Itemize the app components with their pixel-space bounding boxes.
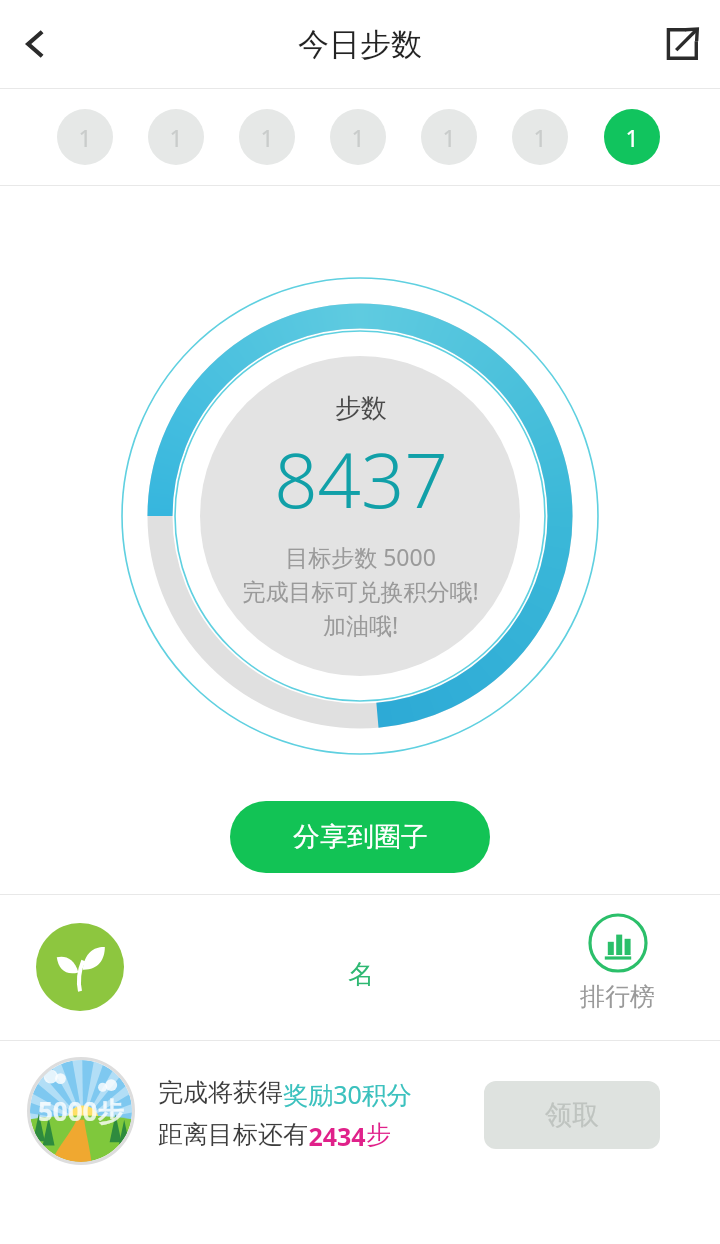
staticText: 分享到圈子: [293, 820, 428, 854]
button[interactable]: 1: [57, 109, 113, 165]
staticText: 目标步数 5000 完成目标可兑换积分哦! 加油哦!: [242, 541, 479, 641]
button[interactable]: Sprout: [36, 923, 124, 1011]
staticText: 步数: [335, 392, 387, 425]
button[interactable]: 分享到圈子: [230, 801, 490, 873]
staticText: 1: [442, 122, 456, 153]
staticText: 1: [169, 122, 183, 153]
staticText: 名: [348, 958, 374, 991]
staticText: 距离目标还有: [158, 1119, 308, 1150]
staticText: 1: [625, 122, 639, 153]
staticText: 1: [78, 122, 92, 153]
staticText: 1: [260, 122, 274, 153]
staticText: 步: [366, 1119, 391, 1150]
staticText: 1: [533, 122, 547, 153]
staticText: 5000步: [38, 1093, 124, 1129]
button[interactable]: 排行榜: [560, 913, 675, 1012]
button[interactable]: 1: [421, 109, 477, 165]
button[interactable]: 1: [604, 109, 660, 165]
staticText: 奖励30积分: [283, 1077, 412, 1111]
button[interactable]: Share: [644, 6, 720, 82]
staticText: 排行榜: [580, 981, 655, 1012]
staticText: 2434: [308, 1119, 366, 1153]
button[interactable]: 1: [512, 109, 568, 165]
button[interactable]: 1: [239, 109, 295, 165]
button[interactable]: Back: [0, 8, 72, 80]
button[interactable]: 1: [148, 109, 204, 165]
staticText: 1: [351, 122, 365, 153]
staticText: 领取: [545, 1098, 599, 1132]
button[interactable]: 领取: [484, 1081, 660, 1149]
staticText: 今日步数: [298, 25, 422, 64]
staticText: 完成将获得: [158, 1077, 283, 1108]
staticText: 8437: [274, 427, 448, 531]
button[interactable]: 1: [330, 109, 386, 165]
